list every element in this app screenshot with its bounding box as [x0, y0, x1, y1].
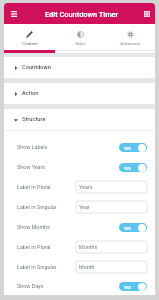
staticText: YES — [124, 146, 131, 150]
button[interactable]: Style — [55, 24, 105, 50]
staticText: Show Labels — [17, 144, 48, 150]
button[interactable]: Show Days — [4, 277, 155, 295]
staticText: Show Years — [17, 164, 46, 170]
button[interactable]: Toggle YES — [119, 223, 147, 232]
staticText: Action — [22, 90, 39, 97]
staticText: Month — [79, 264, 95, 270]
staticText: Label in Singular — [17, 204, 57, 210]
staticText: Edit Countdown Timer — [45, 10, 119, 19]
button[interactable]: Toggle YES — [119, 282, 147, 291]
staticText: Label in Plural — [17, 244, 51, 250]
button[interactable]: Months — [76, 241, 147, 253]
staticText: YES — [124, 166, 131, 170]
staticText: Label in Plural — [17, 184, 51, 190]
staticText: Content — [22, 41, 38, 46]
staticText: Year — [79, 204, 90, 210]
button[interactable]: Year — [76, 201, 147, 213]
button[interactable]: Years — [76, 181, 147, 193]
button[interactable]: Month — [76, 261, 147, 273]
button[interactable]: Apps — [143, 3, 150, 24]
button[interactable]: Structure — [4, 109, 155, 130]
staticText: Label in Singular — [17, 264, 57, 270]
button[interactable]: Countdown — [4, 57, 155, 78]
button[interactable]: Content — [4, 24, 55, 50]
staticText: YES — [124, 285, 131, 289]
button[interactable]: Advanced — [105, 24, 155, 50]
button[interactable]: Toggle YES — [119, 143, 147, 152]
button[interactable]: Show Months — [4, 217, 155, 237]
staticText: Show Months — [17, 224, 50, 230]
staticText: YES — [124, 226, 131, 230]
staticText: Show Days — [17, 283, 44, 289]
button[interactable]: Action — [4, 83, 155, 104]
button[interactable]: Menu — [10, 3, 17, 24]
staticText: Months — [79, 244, 98, 250]
button[interactable]: Show Years — [4, 157, 155, 177]
staticText: Style — [75, 41, 85, 46]
staticText: Years — [79, 184, 93, 190]
staticText: Countdown — [22, 64, 51, 71]
staticText: Structure — [22, 116, 46, 123]
staticText: Advanced — [120, 41, 140, 46]
button[interactable]: Toggle YES — [119, 163, 147, 172]
button[interactable]: Show Labels — [4, 137, 155, 157]
